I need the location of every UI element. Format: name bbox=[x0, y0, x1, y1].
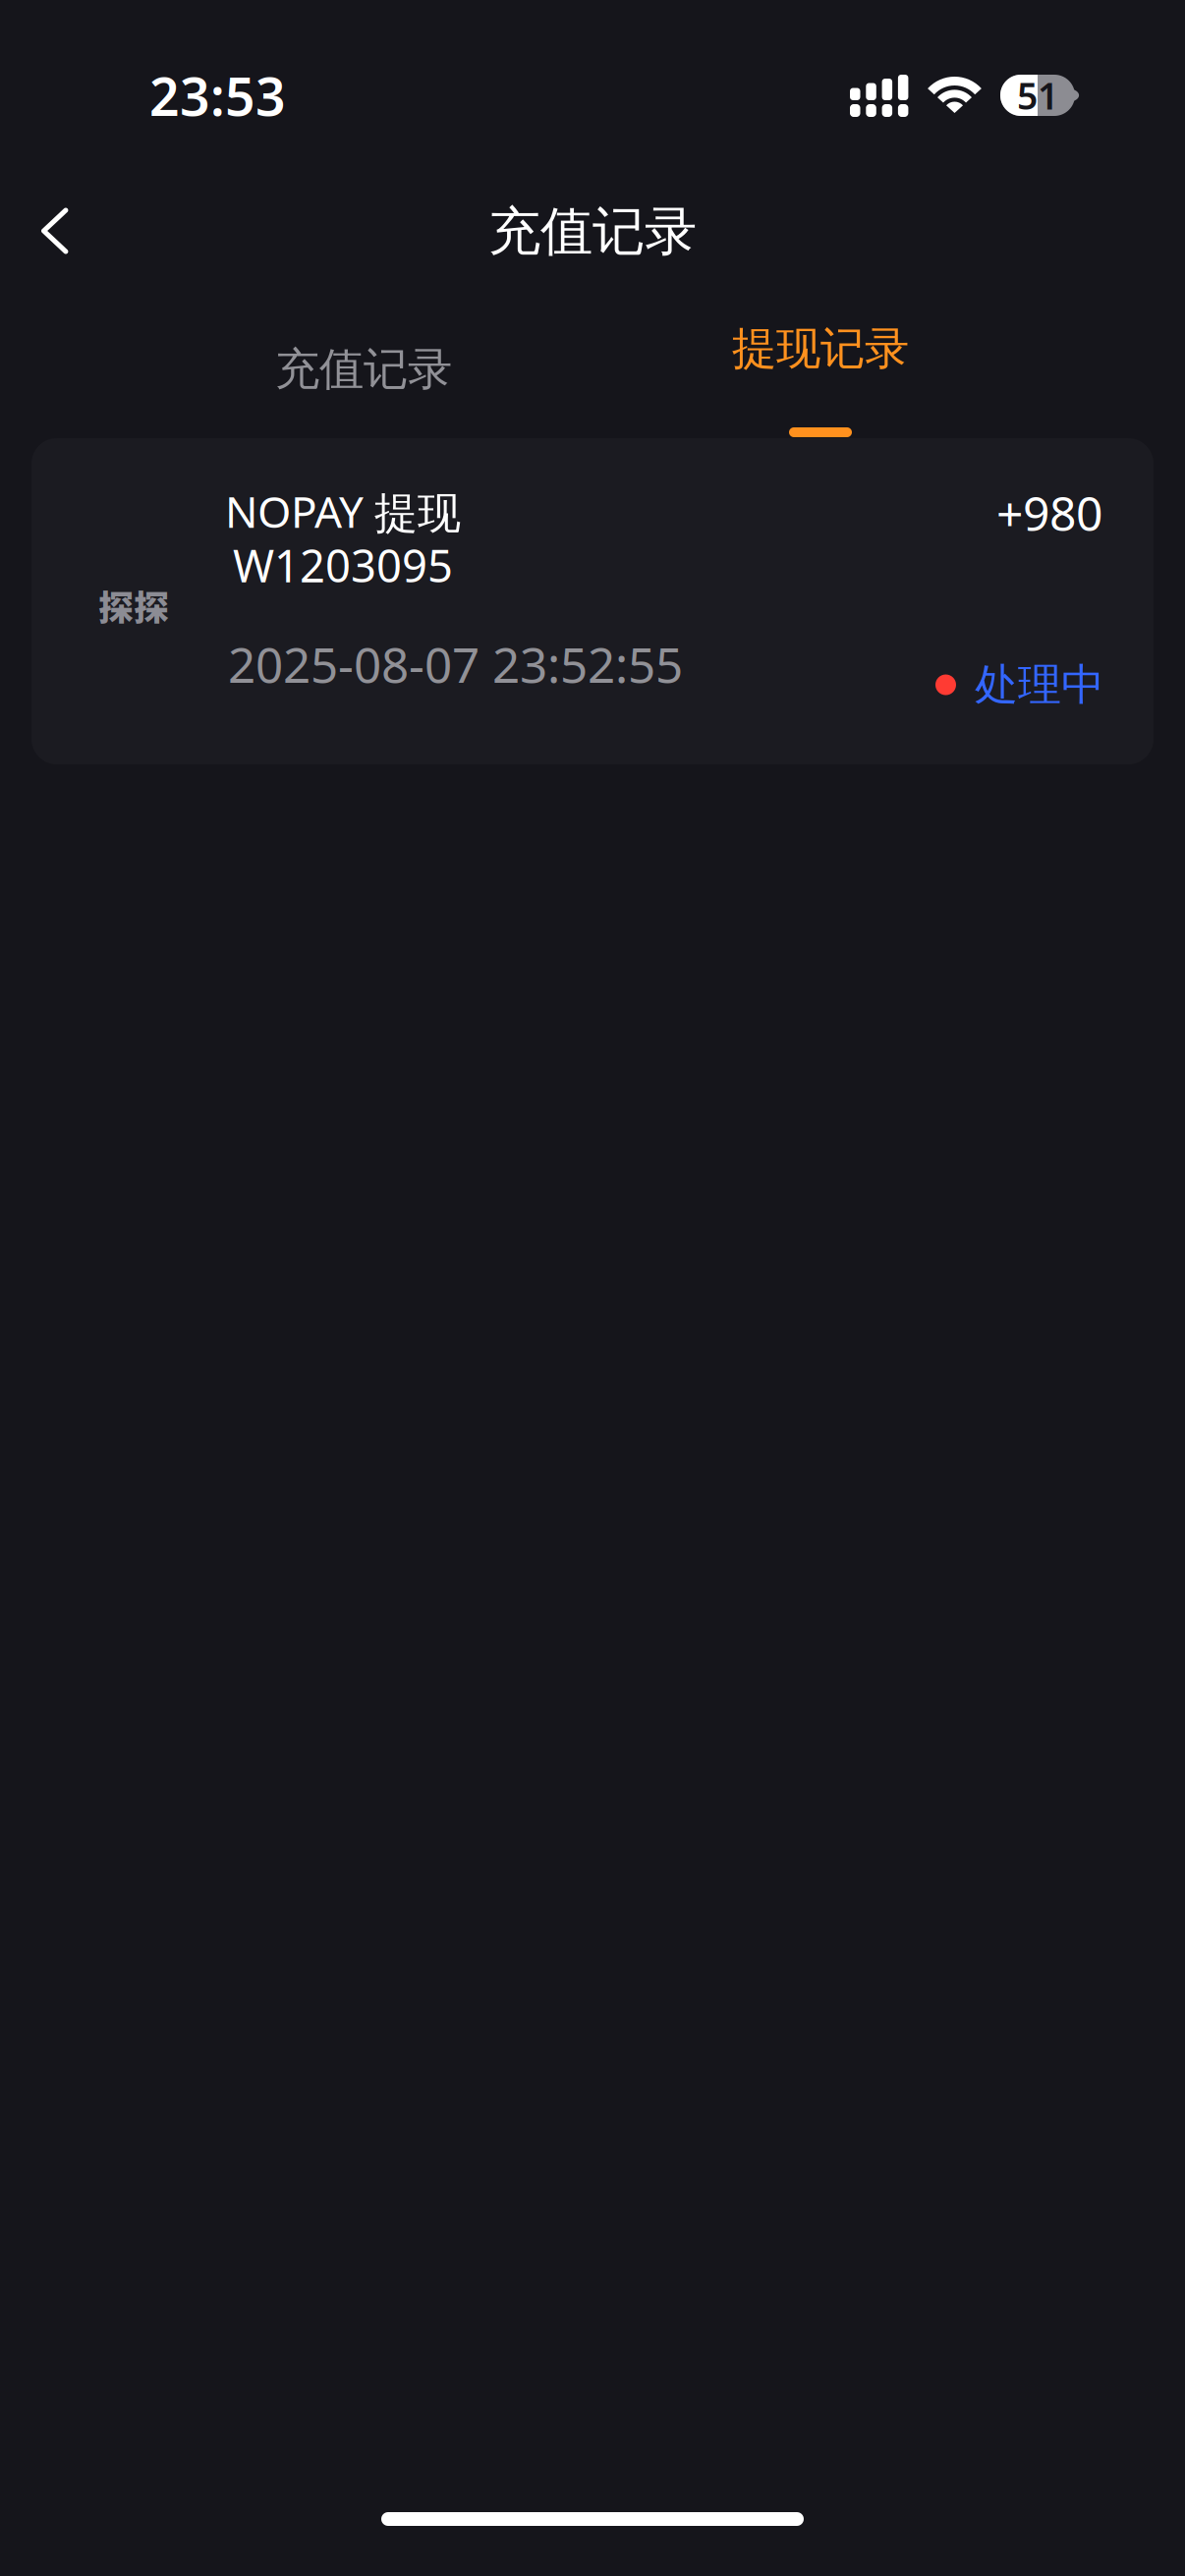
staticText: +980 bbox=[996, 481, 1102, 544]
staticText: 提现记录 bbox=[732, 321, 909, 376]
staticText: 充值记录 bbox=[275, 342, 452, 397]
staticText: 51 bbox=[1017, 71, 1058, 120]
staticText: 充值记录 bbox=[488, 199, 697, 264]
staticText: 23:53 bbox=[149, 61, 286, 130]
staticText: 探探 bbox=[98, 580, 169, 631]
button[interactable]: Back bbox=[6, 182, 104, 280]
button[interactable]: 探探 bbox=[31, 438, 1154, 764]
button[interactable]: 提现记录 bbox=[593, 305, 1047, 434]
staticText: NOPAY 提现 bbox=[225, 482, 461, 540]
staticText: 2025-08-07 23:52:55 bbox=[228, 632, 683, 696]
staticText: W1203095 bbox=[233, 535, 453, 595]
staticText: 处理中 bbox=[975, 658, 1104, 711]
button[interactable]: 充值记录 bbox=[137, 305, 591, 434]
